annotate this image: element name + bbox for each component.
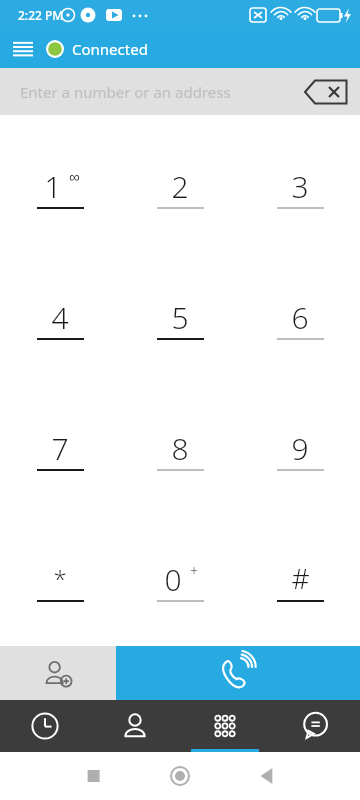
button[interactable]: Add contact — [0, 646, 116, 700]
staticText: 1 — [44, 166, 62, 204]
button[interactable]: 3 — [240, 121, 360, 253]
button[interactable]: Dialpad — [180, 700, 270, 752]
staticText: 2 — [171, 166, 189, 204]
staticText: 6 — [291, 297, 309, 335]
button[interactable]: 5 — [120, 253, 240, 384]
button[interactable]: Recents — [0, 700, 90, 752]
button[interactable]: 7 — [0, 384, 120, 515]
staticText: 9 — [291, 428, 309, 466]
staticText: # — [291, 559, 310, 597]
button[interactable]: Contacts — [90, 700, 180, 752]
button[interactable]: Menu — [0, 30, 46, 68]
button[interactable]: * — [0, 515, 120, 646]
button[interactable]: 6 — [240, 253, 360, 384]
button[interactable]: 8 — [120, 384, 240, 515]
button[interactable]: 9 — [240, 384, 360, 515]
button[interactable]: Backspace — [302, 75, 350, 109]
button[interactable]: 1 — [0, 121, 120, 253]
staticText: 7 — [51, 428, 69, 466]
button[interactable]: 4 — [0, 253, 120, 384]
staticText: + — [190, 561, 198, 580]
staticText: 4 — [51, 297, 69, 335]
button[interactable]: Messages — [270, 700, 360, 752]
staticText: 5 — [171, 297, 189, 335]
button[interactable]: # — [240, 515, 360, 646]
staticText: 8 — [171, 428, 189, 466]
button[interactable]: Enter a number or an address — [0, 68, 360, 115]
button[interactable]: 0 — [120, 515, 240, 646]
staticText: 3 — [291, 166, 309, 204]
staticText: * — [53, 562, 67, 595]
button[interactable]: 2 — [120, 121, 240, 253]
staticText: 0 — [164, 559, 182, 597]
staticText: 2:22 PM — [18, 7, 64, 23]
staticText: Enter a number or an address — [20, 82, 231, 102]
button[interactable]: Call — [116, 646, 360, 700]
staticText: ∞ — [69, 168, 80, 185]
staticText: Connected — [72, 39, 148, 59]
